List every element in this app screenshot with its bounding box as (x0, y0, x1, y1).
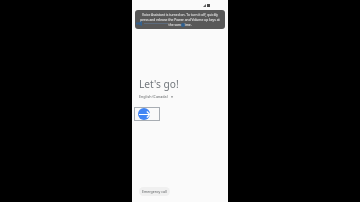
button[interactable]: English (Canada) (139, 94, 173, 99)
staticText: Emergency call (142, 189, 167, 194)
button[interactable]: Next (138, 108, 150, 120)
staticText: English (Canada) (139, 94, 168, 99)
button[interactable]: Emergency call (139, 187, 170, 196)
staticText: Let's go! (139, 77, 179, 91)
staticText: Voice Assistant is turned on. To turn it… (138, 12, 222, 27)
